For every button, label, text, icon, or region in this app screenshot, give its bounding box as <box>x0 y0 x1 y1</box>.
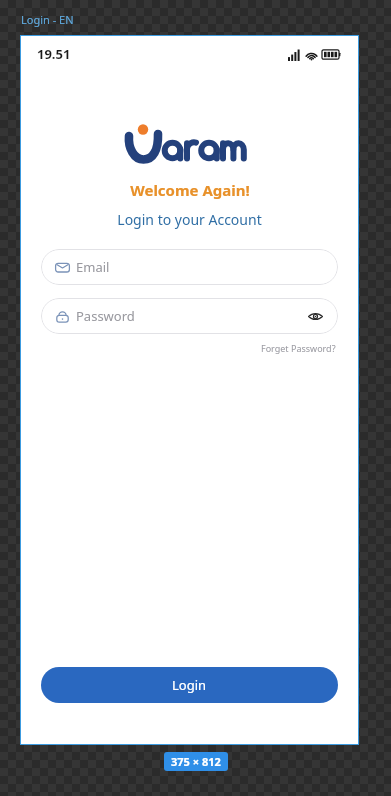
button[interactable]: Email <box>41 249 338 285</box>
staticText: Login <box>172 676 207 694</box>
button[interactable]: Forget Password? <box>259 340 338 356</box>
staticText: 19.51 <box>37 45 71 63</box>
button[interactable]: Show password <box>304 305 326 327</box>
staticText: Login to your Account <box>117 210 262 229</box>
button[interactable]: Login <box>41 667 338 703</box>
staticText: Password <box>76 307 135 325</box>
staticText: Email <box>76 258 110 276</box>
staticText: Login - EN <box>21 12 74 27</box>
staticText: Forget Password? <box>261 342 336 354</box>
staticText: Welcome Again! <box>130 180 250 200</box>
staticText: 375 × 812 <box>171 754 221 769</box>
button[interactable]: Password <box>41 298 338 334</box>
